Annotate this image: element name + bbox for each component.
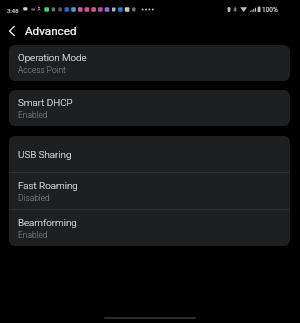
staticText: 100% (262, 6, 278, 14)
button[interactable]: Smart DHCP (9, 90, 290, 126)
staticText: 3:48 (7, 7, 19, 14)
button[interactable]: Operation Mode (9, 45, 290, 81)
button[interactable]: Back (0, 19, 23, 42)
staticText: Beamforming (18, 217, 77, 228)
button[interactable]: Beamforming (9, 210, 290, 246)
staticText: Access Point (18, 65, 66, 75)
button[interactable]: USB Sharing (9, 136, 290, 172)
staticText: Advanced (25, 24, 77, 38)
staticText: Enabled (18, 230, 48, 240)
staticText: Smart DHCP (18, 97, 73, 108)
staticText: USB Sharing (18, 149, 72, 160)
staticText: Operation Mode (18, 52, 87, 63)
staticText: Fast Roaming (18, 180, 78, 191)
staticText: Enabled (18, 110, 48, 120)
button[interactable]: Fast Roaming (9, 173, 290, 209)
staticText: Disabled (18, 193, 50, 203)
